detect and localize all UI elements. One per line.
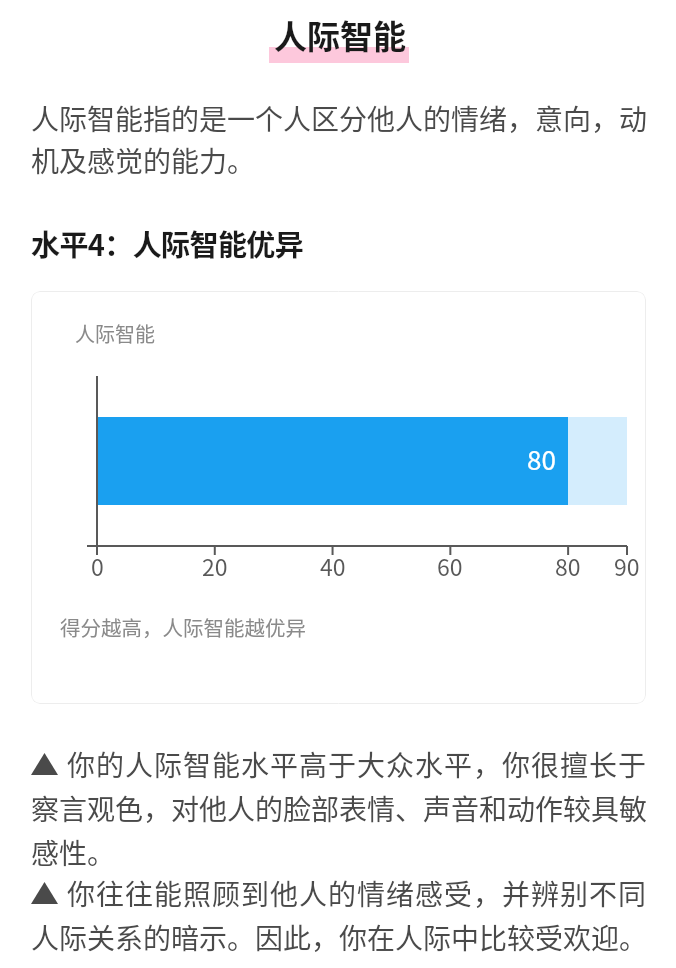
staticText: 20 (202, 549, 228, 582)
staticText: 察言观色，对他人的脸部表情、声音和动作较具敏 感性。 (31, 788, 661, 872)
staticText: 人际智能 (75, 319, 155, 348)
staticText: 水平4：人际智能优异 (31, 222, 304, 264)
staticText: 你的人际智能水平高于大众水平，你很擅长于 (67, 744, 648, 785)
staticText: 80 (555, 549, 581, 582)
staticText: 40 (320, 549, 346, 582)
staticText: 80 (527, 440, 556, 478)
staticText: 0 (91, 549, 104, 582)
staticText: 得分越高，人际智能越优异 (60, 612, 306, 642)
staticText: 60 (437, 549, 463, 582)
staticText: 人际智能 (274, 11, 406, 59)
staticText: 你往往能照顾到他人的情绪感受，并辨别不同 (67, 873, 648, 914)
staticText: 人际关系的暗示。因此，你在人际中比较受欢迎。 (31, 917, 661, 958)
button[interactable]: 人际智能得分 80 分，满分 90 分 (31, 291, 646, 704)
staticText: 人际智能指的是一个人区分他人的情绪，意向，动机及感觉的能力。 (31, 98, 656, 180)
staticText: 90 (614, 549, 640, 582)
